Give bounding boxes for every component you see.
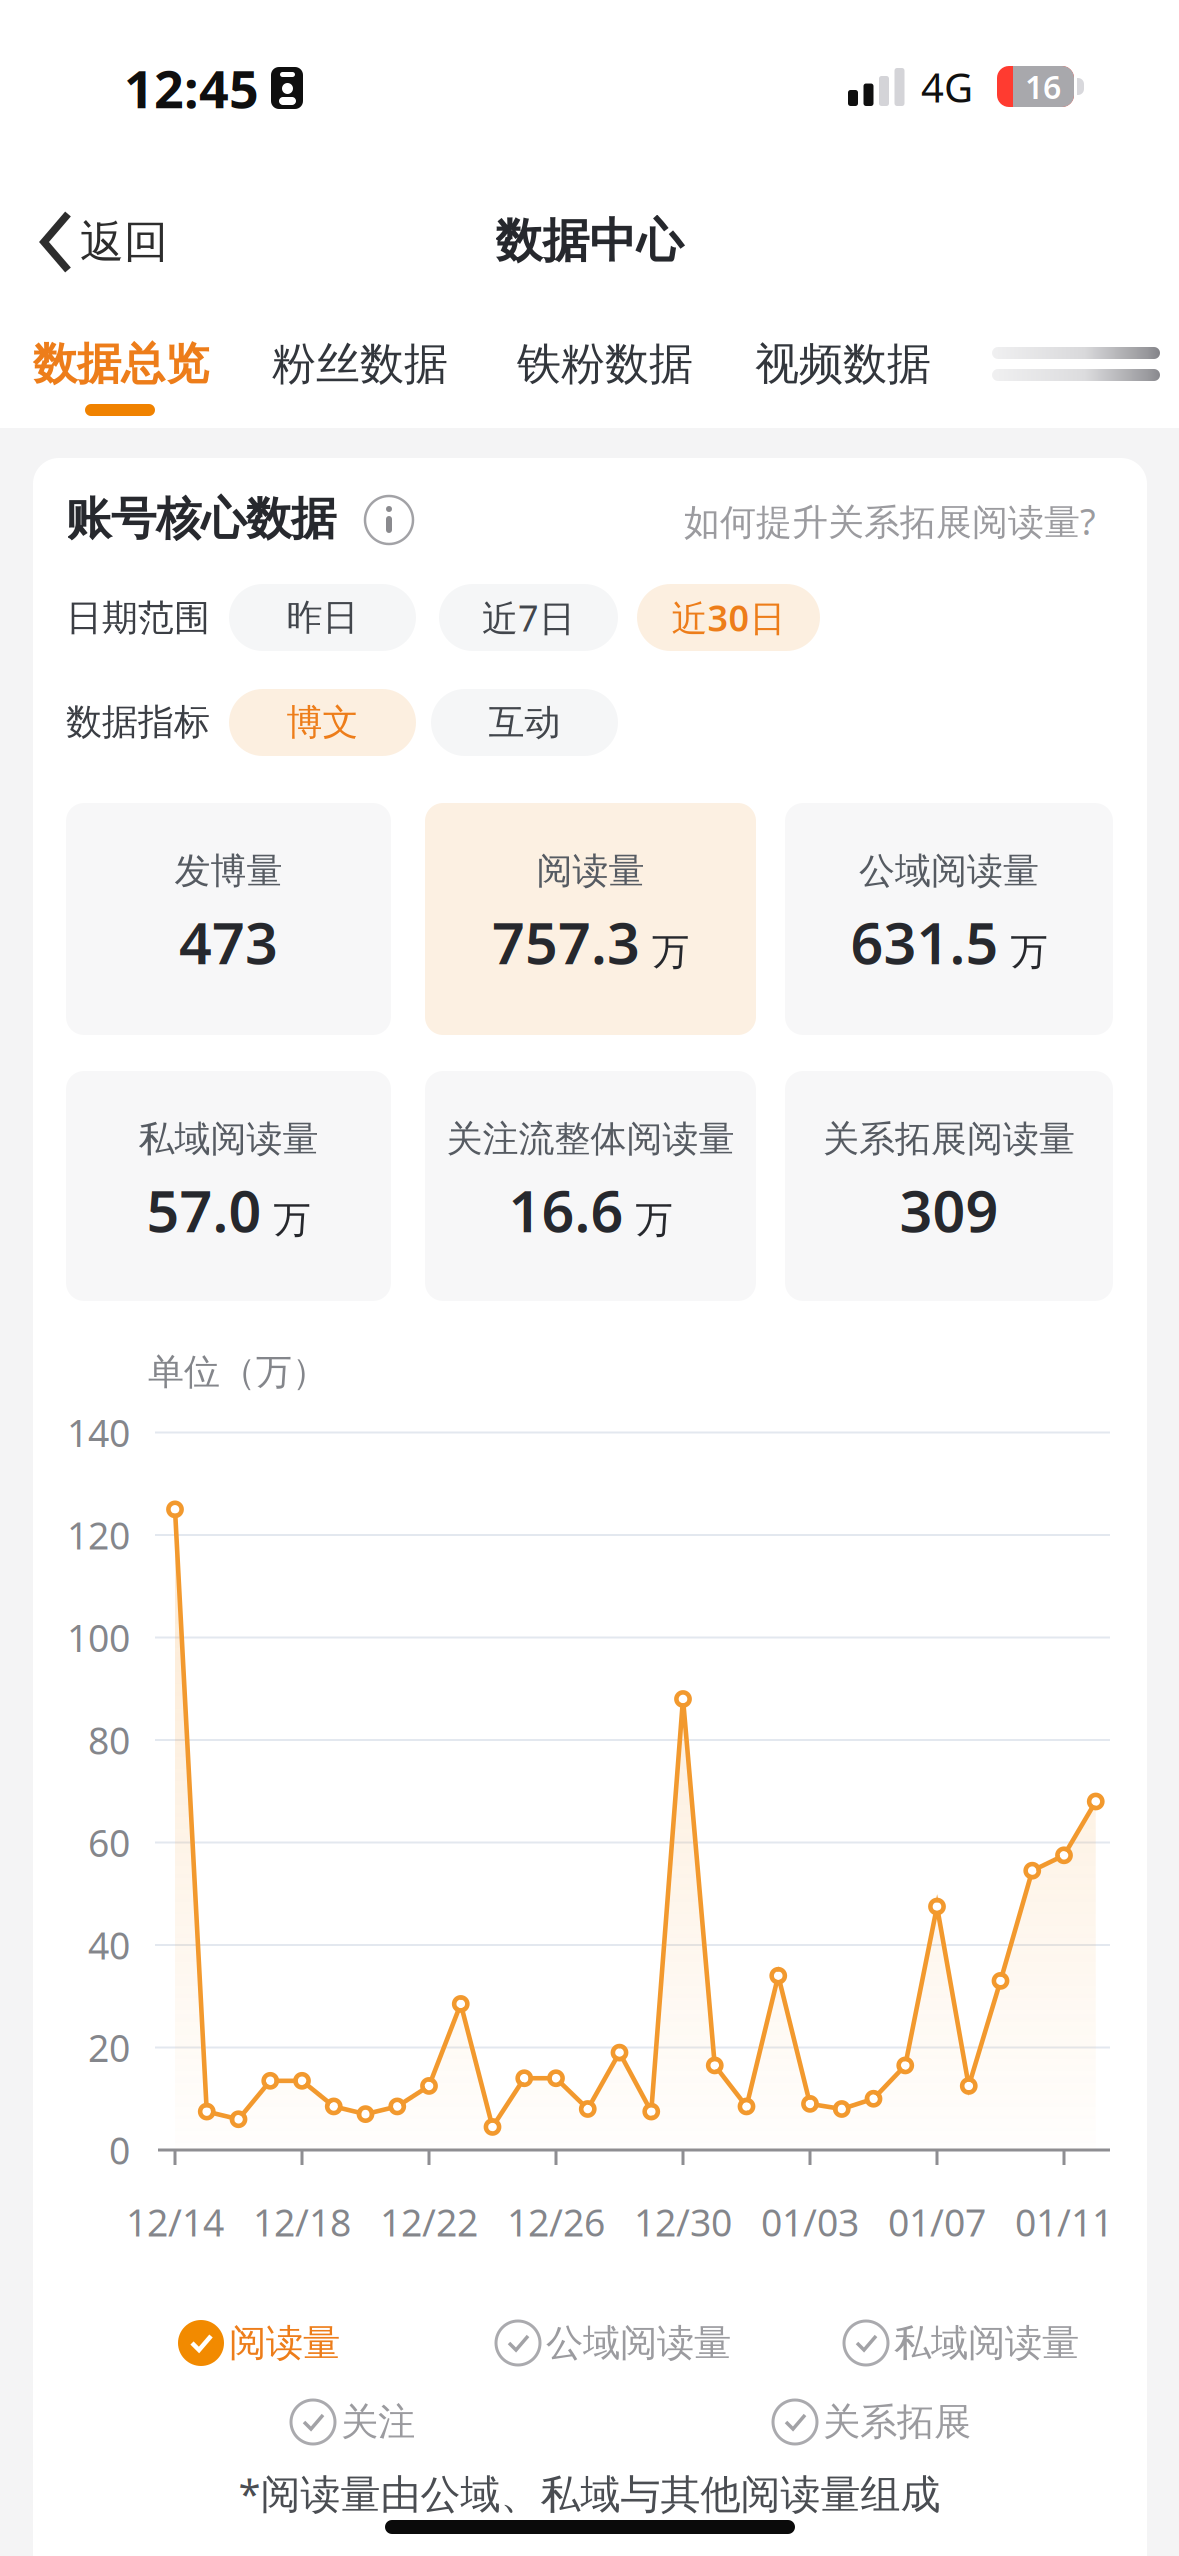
staticText: 铁粉数据 — [517, 337, 693, 391]
staticText: 12/18 — [253, 2197, 351, 2247]
button[interactable]: 返回 — [0, 0, 280, 120]
staticText: 60 — [88, 1818, 130, 1867]
staticText: 12/30 — [634, 2197, 732, 2247]
staticText: 01/03 — [761, 2197, 859, 2247]
staticText: 万 — [273, 1197, 310, 1243]
staticText: 如何提升关系拓展阅读量? — [684, 497, 1096, 545]
staticText: 万 — [652, 929, 689, 975]
button[interactable]: 阅读量 — [178, 2320, 578, 2366]
button[interactable]: 数据总览 — [0, 0, 1179, 2556]
staticText: 12/22 — [380, 2197, 478, 2247]
button[interactable]: 粉丝数据 — [0, 0, 1179, 2556]
button[interactable]: 阅读量 — [425, 803, 756, 1035]
button[interactable]: 私域阅读量 — [66, 1071, 391, 1301]
staticText: 12:45 — [124, 53, 259, 123]
staticText: 12/14 — [126, 2197, 224, 2247]
staticText: 0 — [109, 2125, 130, 2175]
staticText: 57.0 — [146, 1172, 261, 1248]
button[interactable]: 昨日 — [229, 584, 416, 651]
button[interactable]: 公域阅读量 — [785, 803, 1113, 1035]
staticText: 140 — [67, 1408, 130, 1457]
staticText: 100 — [67, 1613, 130, 1662]
staticText: 发博量 — [174, 849, 282, 893]
staticText: 阅读量 — [229, 2320, 340, 2366]
staticText: 私域阅读量 — [138, 1117, 318, 1161]
button[interactable]: 私域阅读量 — [843, 2320, 1179, 2366]
button[interactable] — [365, 496, 413, 544]
button[interactable]: 铁粉数据 — [0, 0, 1179, 2556]
staticText: 万 — [635, 1197, 672, 1243]
staticText: 12/26 — [507, 2197, 605, 2247]
staticText: 757.3 — [492, 904, 640, 980]
staticText: 万 — [1010, 929, 1047, 975]
staticText: *阅读量由公域、私域与其他阅读量组成 — [238, 2466, 940, 2519]
staticText: 473 — [179, 904, 278, 980]
staticText: 公域阅读量 — [859, 849, 1039, 893]
staticText: 16.6 — [508, 1172, 623, 1248]
staticText: 数据中心 — [495, 212, 683, 270]
staticText: 近7日 — [482, 594, 575, 641]
staticText: 账号核心数据 — [66, 491, 336, 547]
staticText: 视频数据 — [755, 337, 931, 391]
button[interactable]: 公域阅读量 — [495, 2320, 895, 2366]
button[interactable]: 近7日 — [439, 584, 618, 651]
button[interactable]: 博文 — [229, 689, 416, 756]
staticText: 关注流整体阅读量 — [446, 1117, 734, 1161]
button[interactable]: 视频数据 — [0, 0, 1179, 2556]
staticText: 日期范围 — [66, 596, 210, 640]
staticText: 返回 — [80, 215, 168, 269]
staticText: 昨日 — [286, 595, 358, 640]
staticText: 博文 — [286, 700, 358, 745]
button[interactable]: 关系拓展 — [772, 2399, 1172, 2445]
staticText: 数据总览 — [33, 337, 209, 391]
staticText: 309 — [899, 1172, 998, 1248]
staticText: 16 — [1025, 65, 1061, 108]
staticText: 关注 — [341, 2399, 415, 2445]
staticText: 关系拓展 — [823, 2399, 971, 2445]
button[interactable]: 关注 — [290, 2399, 690, 2445]
staticText: 01/11 — [1015, 2197, 1113, 2247]
staticText: 公域阅读量 — [546, 2320, 731, 2366]
staticText: 01/07 — [888, 2197, 986, 2247]
staticText: 40 — [88, 1920, 130, 1970]
staticText: 互动 — [488, 700, 560, 745]
staticText: 阅读量 — [536, 849, 644, 893]
staticText: 80 — [88, 1715, 130, 1765]
staticText: 单位（万） — [148, 1350, 328, 1394]
button[interactable]: 关注流整体阅读量 — [425, 1071, 756, 1301]
button[interactable]: 关系拓展阅读量 — [785, 1071, 1113, 1301]
staticText: 120 — [67, 1510, 130, 1560]
button[interactable]: 发博量 — [66, 803, 391, 1035]
staticText: 私域阅读量 — [894, 2320, 1079, 2366]
button[interactable]: 互动 — [431, 689, 618, 756]
staticText: 近30日 — [671, 594, 785, 641]
button[interactable]: 如何提升关系拓展阅读量? — [0, 0, 1179, 2556]
button[interactable]: 近30日 — [637, 584, 820, 651]
staticText: 关系拓展阅读量 — [823, 1117, 1075, 1161]
staticText: 数据指标 — [66, 700, 210, 744]
staticText: 粉丝数据 — [272, 337, 448, 391]
staticText: 4G — [921, 60, 973, 113]
staticText: 20 — [88, 2023, 130, 2072]
staticText: 631.5 — [850, 904, 998, 980]
